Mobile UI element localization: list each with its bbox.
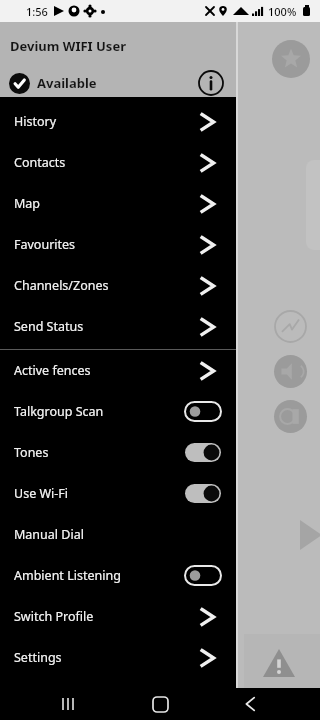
staticText: Talkgroup Scan (14, 403, 104, 420)
button[interactable]: Active fences (0, 350, 238, 391)
staticText: History (14, 113, 57, 130)
button[interactable]: Tones (0, 432, 238, 473)
staticText: Settings (14, 649, 62, 666)
staticText: Manual Dial (14, 526, 84, 543)
button[interactable]: Home (148, 692, 172, 716)
button[interactable]: History (0, 101, 238, 142)
staticText: Favourites (14, 236, 76, 253)
staticText: Tones (14, 444, 49, 461)
button[interactable]: Info (196, 69, 226, 97)
button[interactable]: Manual Dial (0, 514, 238, 555)
button[interactable]: Recents (57, 692, 81, 716)
staticText: Send Status (14, 318, 84, 335)
button[interactable]: Settings (0, 637, 238, 678)
staticText: Switch Profile (14, 608, 94, 625)
button[interactable]: Switch Profile (0, 596, 238, 637)
staticText: Devium WIFI User (10, 37, 126, 55)
button[interactable]: Talkgroup Scan (0, 391, 238, 432)
staticText: Ambient Listening (14, 567, 121, 584)
staticText: Map (14, 195, 41, 212)
button[interactable]: Devium WIFI User (0, 22, 238, 97)
button[interactable]: Ambient Listening (0, 555, 238, 596)
staticText: Contacts (14, 154, 66, 171)
staticText: Channels/Zones (14, 277, 109, 294)
button[interactable]: Use Wi-Fi (0, 473, 238, 514)
staticText: 1:56 (26, 4, 48, 19)
staticText: Use Wi-Fi (14, 485, 69, 502)
staticText: 100% (268, 4, 297, 19)
button[interactable]: Channels/Zones (0, 265, 238, 306)
button[interactable]: Back (238, 692, 262, 716)
staticText: Active fences (14, 362, 91, 379)
staticText: Available (37, 74, 97, 92)
button[interactable]: Send Status (0, 306, 238, 347)
button[interactable]: Map (0, 183, 238, 224)
button[interactable]: Favourites (0, 224, 238, 265)
button[interactable]: Contacts (0, 142, 238, 183)
